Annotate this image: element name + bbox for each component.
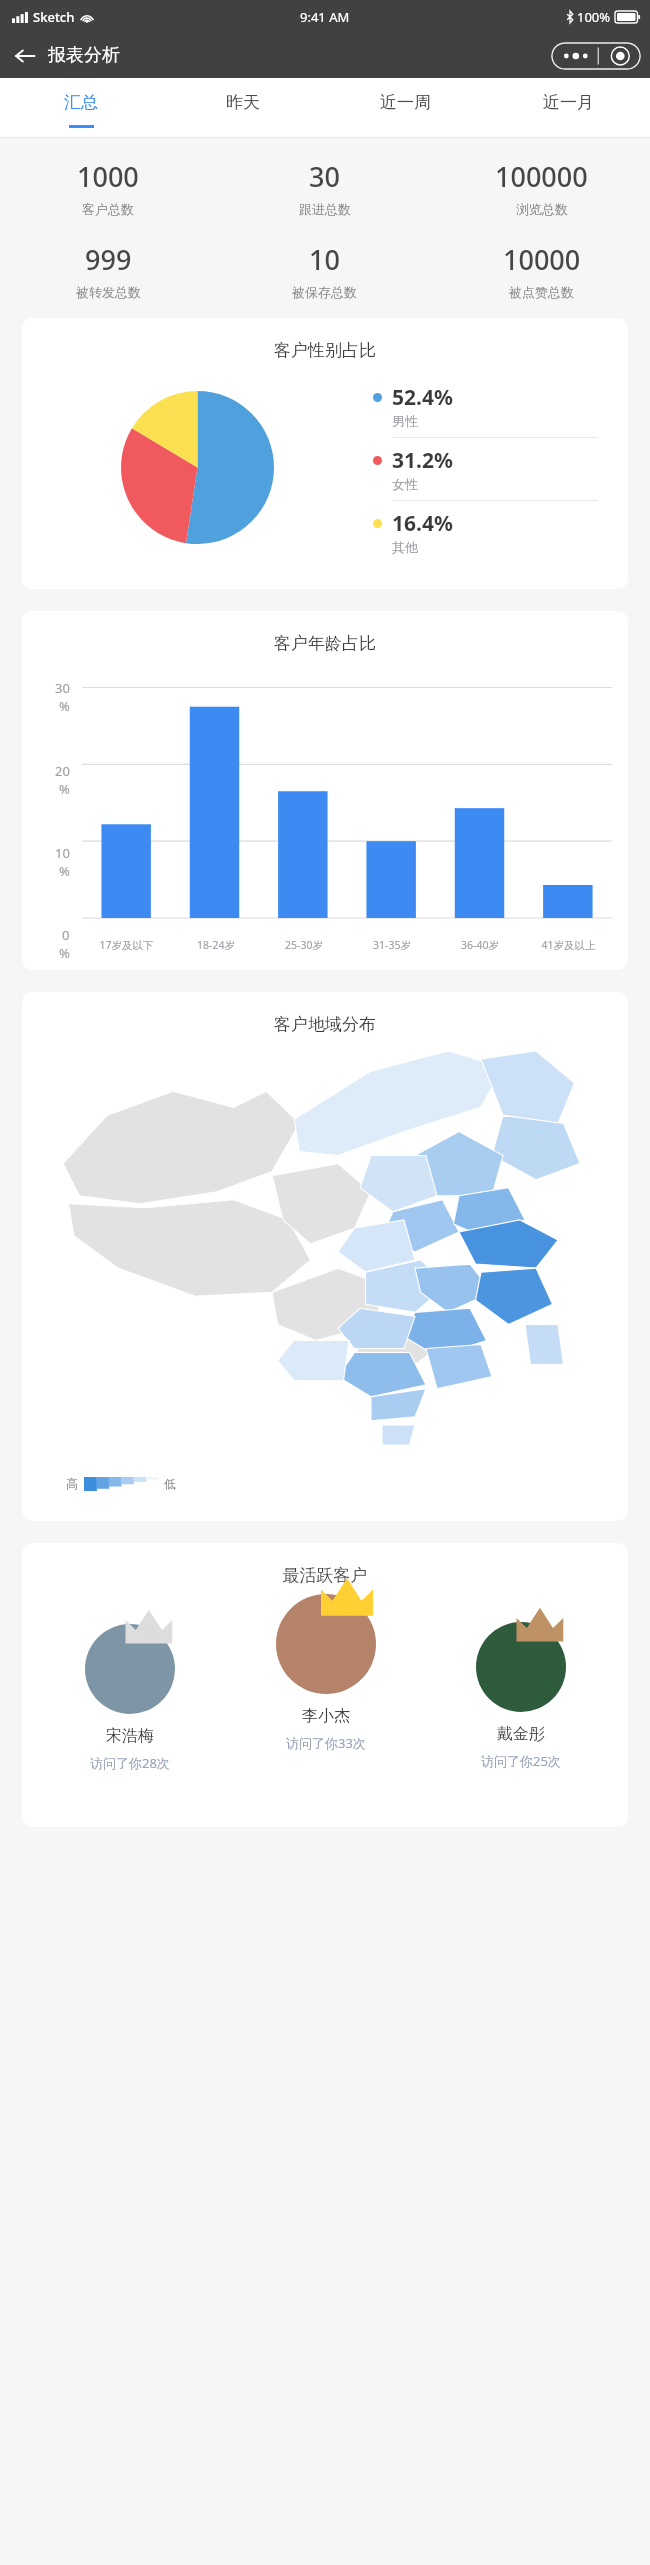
staticText: 18-24岁 bbox=[197, 938, 235, 952]
button[interactable]: 100000 bbox=[433, 158, 650, 217]
staticText: 36-40岁 bbox=[461, 938, 499, 952]
button[interactable]: 16.4% bbox=[373, 501, 602, 563]
button[interactable]: 30 bbox=[216, 158, 433, 217]
button[interactable]: 10000 bbox=[433, 241, 650, 300]
staticText: 近一周 bbox=[380, 92, 431, 113]
staticText: 访问了你33次 bbox=[286, 1734, 366, 1752]
staticText: 41岁及以上 bbox=[541, 938, 596, 952]
staticText: 1000 bbox=[77, 158, 139, 195]
staticText: 李小杰 bbox=[302, 1706, 350, 1726]
button[interactable]: 昨天 bbox=[162, 78, 324, 138]
button[interactable]: 999 bbox=[0, 241, 216, 300]
button[interactable]: 最活跃客户 bbox=[22, 1543, 628, 1827]
staticText: 男性 bbox=[392, 413, 418, 429]
staticText: 31.2% bbox=[392, 446, 453, 475]
staticText: 16.4% bbox=[392, 509, 453, 538]
button[interactable]: 31.2% bbox=[373, 438, 602, 500]
staticText: 女性 bbox=[392, 476, 418, 492]
button[interactable]: 客户性别占比 bbox=[22, 318, 628, 589]
staticText: 10 bbox=[55, 844, 70, 862]
staticText: 被转发总数 bbox=[76, 284, 141, 300]
button[interactable]: Back bbox=[0, 38, 130, 73]
button[interactable]: 戴金彤 bbox=[423, 1586, 618, 1770]
staticText: 访问了你25次 bbox=[481, 1752, 561, 1770]
staticText: 戴金彤 bbox=[497, 1724, 545, 1744]
button[interactable]: 客户地域分布 bbox=[22, 992, 628, 1521]
staticText: 昨天 bbox=[226, 92, 260, 113]
staticText: 宋浩梅 bbox=[106, 1726, 154, 1746]
staticText: % bbox=[59, 944, 70, 962]
staticText: 跟进总数 bbox=[299, 201, 351, 217]
button[interactable]: 客户年龄占比 bbox=[22, 611, 628, 970]
staticText: 访问了你28次 bbox=[90, 1754, 170, 1772]
staticText: 10000 bbox=[503, 241, 581, 278]
staticText: 客户地域分布 bbox=[22, 1014, 628, 1035]
staticText: 其他 bbox=[392, 539, 418, 555]
staticText: 30 bbox=[309, 158, 340, 195]
button[interactable]: 汇总 bbox=[0, 78, 162, 138]
staticText: 浏览总数 bbox=[516, 201, 568, 217]
staticText: 被保存总数 bbox=[292, 284, 357, 300]
other: Back bbox=[14, 45, 36, 67]
staticText: 最活跃客户 bbox=[22, 1565, 628, 1586]
button[interactable]: 近一月 bbox=[487, 78, 650, 138]
staticText: 被点赞总数 bbox=[509, 284, 574, 300]
staticText: 17岁及以下 bbox=[99, 938, 154, 952]
button[interactable]: 宋浩梅 bbox=[32, 1586, 228, 1772]
button[interactable]: 近一周 bbox=[324, 78, 487, 138]
staticText: 999 bbox=[85, 241, 132, 278]
staticText: 52.4% bbox=[392, 383, 453, 412]
staticText: 9:41 AM bbox=[300, 8, 350, 26]
staticText: 10 bbox=[309, 241, 340, 278]
staticText: 客户年龄占比 bbox=[22, 633, 628, 654]
staticText: % bbox=[59, 697, 70, 715]
staticText: 0 bbox=[62, 926, 70, 944]
button[interactable]: 10 bbox=[216, 241, 433, 300]
staticText: 25-30岁 bbox=[285, 938, 323, 952]
button[interactable]: 李小杰 bbox=[228, 1586, 423, 1752]
staticText: 100000 bbox=[495, 158, 588, 195]
button[interactable]: 52.4% bbox=[373, 375, 602, 437]
staticText: % bbox=[59, 862, 70, 880]
staticText: 31-35岁 bbox=[373, 938, 411, 952]
staticText: 100% bbox=[577, 8, 611, 26]
button[interactable]: 1000 bbox=[0, 158, 216, 217]
staticText: 汇总 bbox=[64, 92, 98, 113]
staticText: 近一月 bbox=[543, 92, 594, 113]
staticText: 30 bbox=[55, 679, 70, 697]
staticText: 20 bbox=[55, 762, 70, 780]
staticText: 报表分析 bbox=[48, 44, 120, 67]
staticText: Sketch bbox=[33, 8, 75, 26]
button[interactable]: More options bbox=[551, 42, 641, 70]
staticText: % bbox=[59, 780, 70, 798]
staticText: 低 bbox=[164, 1476, 176, 1491]
staticText: 客户总数 bbox=[82, 201, 134, 217]
staticText: 客户性别占比 bbox=[22, 340, 628, 361]
staticText: 高 bbox=[66, 1476, 78, 1491]
